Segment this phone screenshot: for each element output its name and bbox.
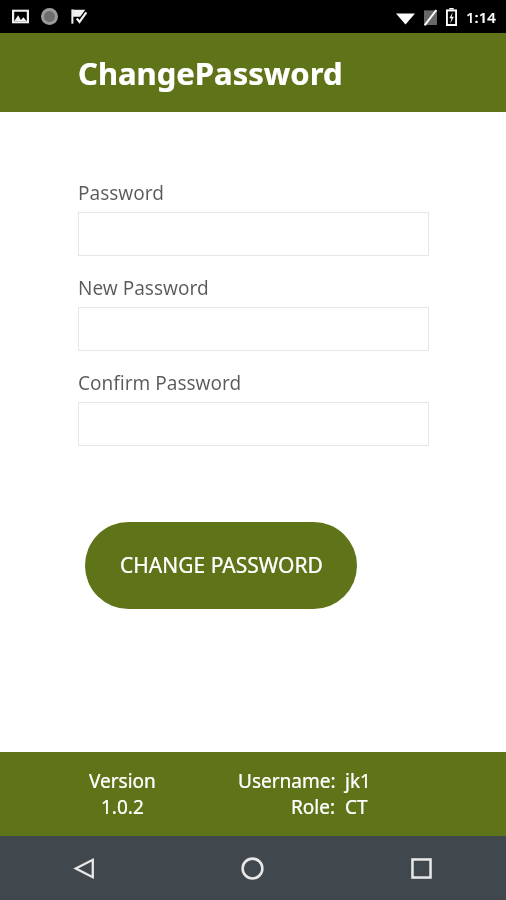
staticText: 1.0.2 — [101, 794, 144, 820]
staticText: New Password — [78, 275, 209, 301]
staticText: Username: — [238, 768, 336, 794]
button[interactable] — [78, 307, 429, 351]
button[interactable]: Back — [0, 836, 168, 900]
button[interactable]: CHANGE PASSWORD — [85, 522, 357, 609]
staticText: Confirm Password — [78, 370, 242, 396]
button[interactable]: Recent apps — [337, 836, 506, 900]
staticText: Password — [78, 180, 164, 206]
staticText: 1:14 — [466, 7, 496, 27]
staticText: Role: — [291, 794, 336, 820]
button[interactable]: Home — [168, 836, 337, 900]
staticText: Version — [89, 768, 156, 794]
staticText: CT — [345, 794, 368, 820]
button[interactable] — [78, 212, 429, 256]
staticText: CHANGE PASSWORD — [120, 551, 323, 580]
button[interactable] — [78, 402, 429, 446]
staticText: ChangePassword — [78, 52, 343, 94]
staticText: jk1 — [345, 768, 371, 794]
